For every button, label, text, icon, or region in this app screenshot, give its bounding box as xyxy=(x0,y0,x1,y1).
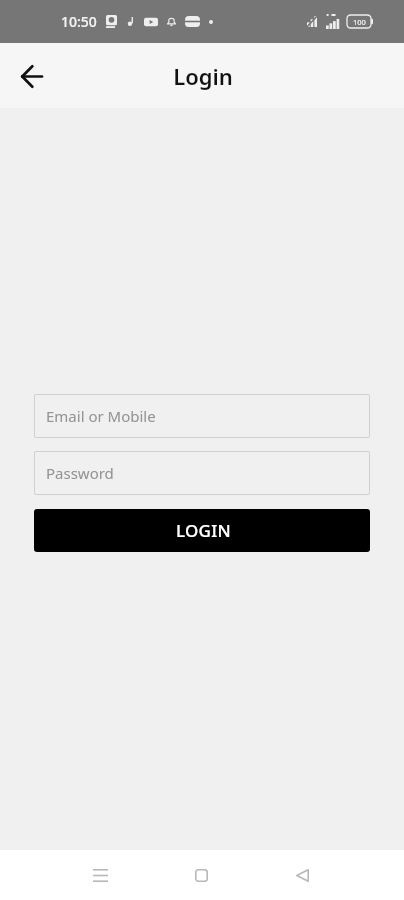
button[interactable]: Recent apps xyxy=(76,851,124,899)
staticText: Password xyxy=(46,463,114,483)
button[interactable]: Back xyxy=(278,851,326,899)
staticText: 100 xyxy=(353,17,366,27)
staticText: 10:50 xyxy=(61,12,97,31)
button[interactable]: Password xyxy=(34,451,370,495)
staticText: LOGIN xyxy=(176,519,231,542)
staticText: Email or Mobile xyxy=(46,406,156,426)
button[interactable]: Home xyxy=(177,851,225,899)
staticText: Login xyxy=(173,61,233,91)
button[interactable]: LOGIN xyxy=(34,509,370,552)
button[interactable]: Email or Mobile xyxy=(34,394,370,438)
button[interactable]: Back xyxy=(11,56,51,96)
